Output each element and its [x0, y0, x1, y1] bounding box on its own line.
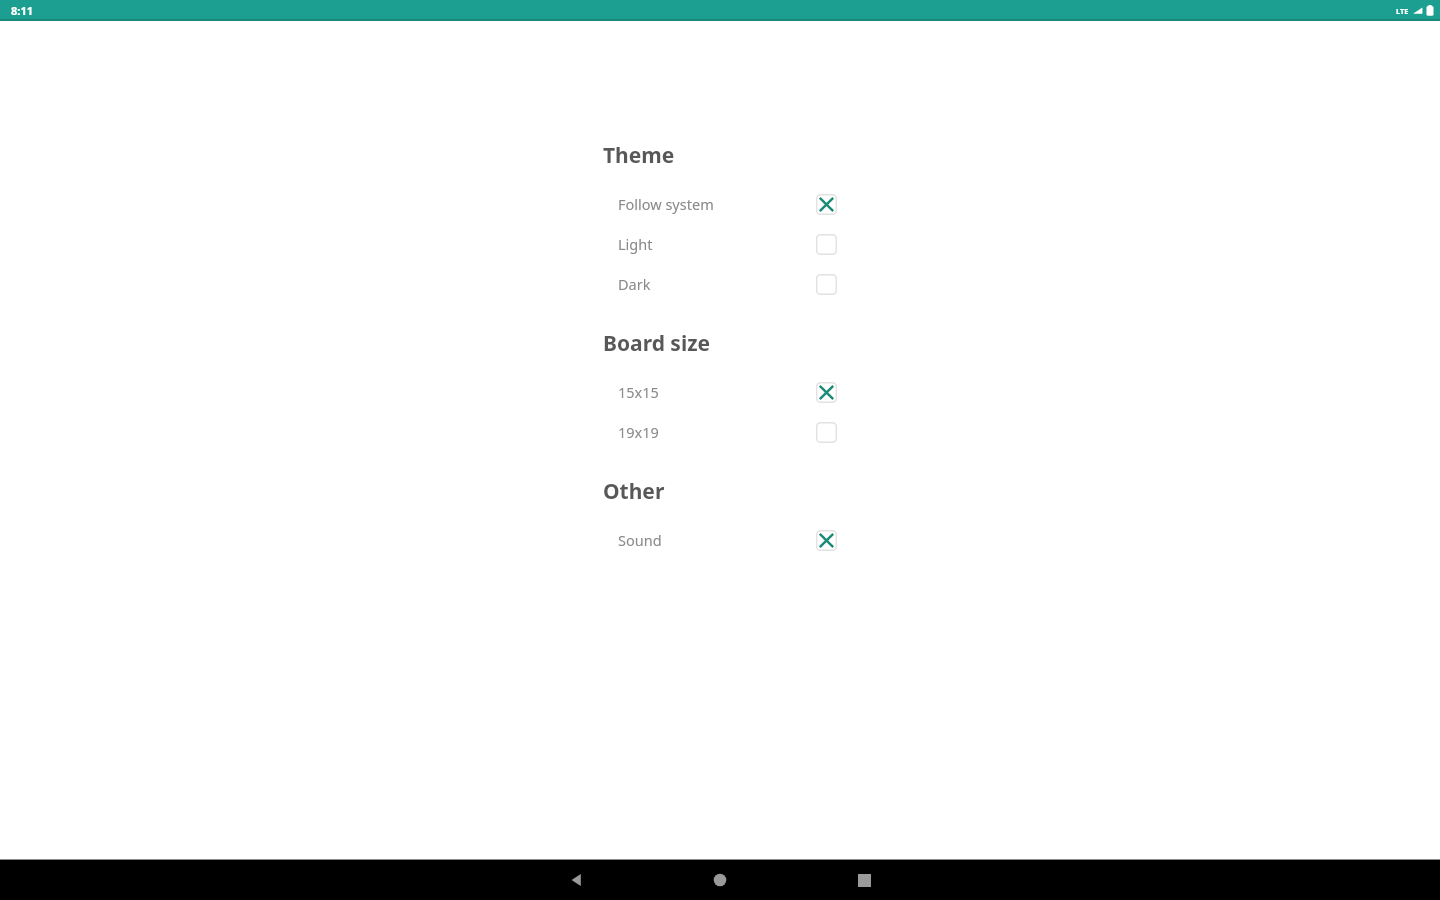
button[interactable]: 19x19 — [603, 412, 838, 452]
button[interactable]: Recent apps — [828, 860, 900, 900]
staticText: Theme — [603, 141, 675, 170]
staticText: Other — [603, 477, 665, 506]
staticText: Follow system — [618, 194, 714, 214]
staticText: LTE — [1396, 6, 1409, 16]
button[interactable]: Dark — [603, 264, 838, 304]
button[interactable]: Home — [684, 860, 756, 900]
button[interactable]: Sound — [603, 520, 838, 560]
staticText: 8:11 — [11, 3, 33, 18]
staticText: Light — [618, 234, 653, 254]
button[interactable]: Follow system — [603, 184, 838, 224]
staticText: 15x15 — [618, 382, 659, 402]
button[interactable]: 15x15 — [603, 372, 838, 412]
staticText: Dark — [618, 274, 651, 294]
staticText: 19x19 — [618, 422, 659, 442]
staticText: Board size — [603, 329, 711, 358]
button[interactable]: Back — [540, 860, 612, 900]
staticText: Sound — [618, 530, 662, 550]
button[interactable]: Light — [603, 224, 838, 264]
